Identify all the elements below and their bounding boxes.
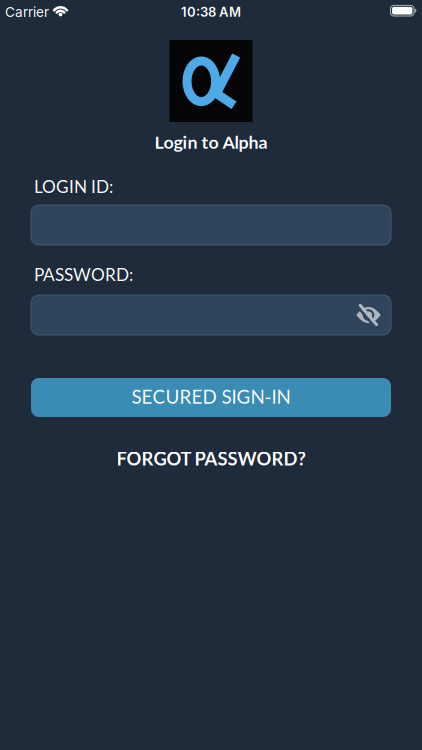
staticText: PASSWORD: <box>34 264 133 285</box>
staticText: LOGIN ID: <box>34 176 113 197</box>
button[interactable]: Password <box>31 295 391 335</box>
staticText: 10:38 AM <box>181 4 241 20</box>
button[interactable]: Show password <box>356 307 391 323</box>
staticText: Carrier <box>5 4 49 20</box>
staticText: FORGOT PASSWORD? <box>116 447 305 469</box>
button[interactable]: FORGOT PASSWORD? <box>116 447 305 469</box>
staticText: SECURED SIGN-IN <box>131 385 290 408</box>
button[interactable]: SECURED SIGN-IN <box>31 378 391 417</box>
staticText: Login to Alpha <box>154 131 267 152</box>
